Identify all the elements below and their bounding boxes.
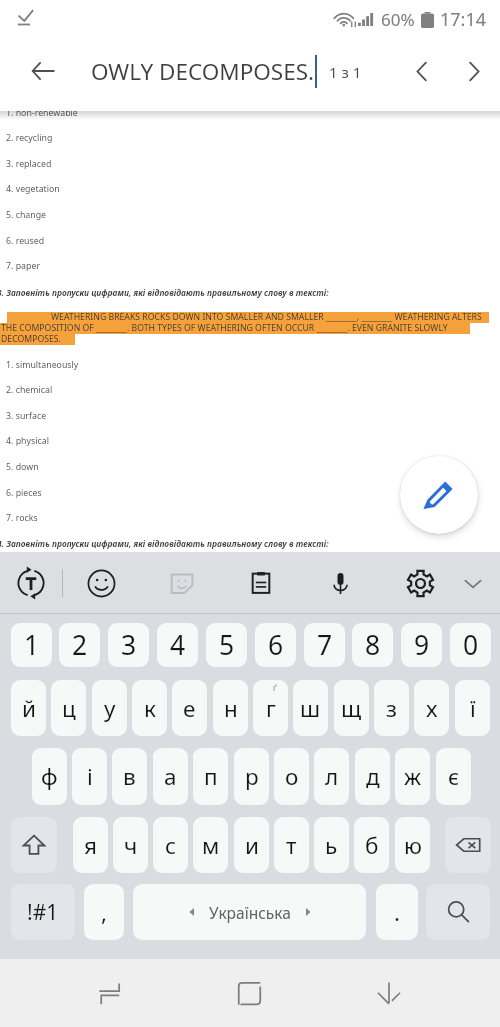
staticText: 3. Заповніть пропуски цифрами, які відпо… <box>0 287 329 298</box>
button[interactable]: е <box>172 680 207 736</box>
button[interactable]: Previous result <box>400 49 444 93</box>
button[interactable]: Keyboard settings <box>398 561 442 605</box>
button[interactable]: Search <box>426 884 490 940</box>
button[interactable]: ц <box>51 680 86 736</box>
button[interactable]: Recent apps <box>64 967 154 1019</box>
staticText: е <box>183 693 196 724</box>
button[interactable]: 1 <box>11 623 52 667</box>
staticText: 17:14 <box>440 7 487 32</box>
button[interactable]: т <box>274 817 309 873</box>
staticText: 2. chemical <box>6 384 53 396</box>
staticText: WEATHERING BREAKS ROCKS DOWN INTO SMALLE… <box>51 311 482 322</box>
button[interactable]: 5 <box>206 623 247 667</box>
button[interactable]: Hide keyboard <box>451 561 495 605</box>
staticText: 6 <box>268 627 284 663</box>
staticText: 2. recycling <box>6 132 53 144</box>
staticText: і <box>87 761 93 792</box>
staticText: ж <box>404 761 422 792</box>
button[interactable]: щ <box>334 680 369 736</box>
button[interactable]: а <box>153 748 188 805</box>
staticText: THE COMPOSITION OF ________. BOTH TYPES … <box>1 322 448 333</box>
staticText: 7. rocks <box>6 512 38 524</box>
button[interactable]: с <box>153 817 188 873</box>
button[interactable]: у <box>92 680 127 736</box>
button[interactable]: Backspace <box>445 817 491 873</box>
button[interactable]: Translate <box>9 561 53 605</box>
staticText: 9 <box>414 627 430 663</box>
button[interactable]: , <box>84 884 124 940</box>
button[interactable]: к <box>132 680 167 736</box>
button[interactable]: л <box>314 748 349 805</box>
button[interactable]: я <box>73 817 108 873</box>
staticText: є <box>448 761 460 792</box>
button[interactable]: й <box>11 680 46 736</box>
button[interactable]: 9 <box>401 623 442 667</box>
staticText: !#1 <box>27 898 59 927</box>
staticText: 1. simultaneously <box>6 359 79 371</box>
button[interactable]: ж <box>395 748 430 805</box>
button[interactable]: Shift <box>11 817 57 873</box>
staticText: 1 <box>24 627 40 663</box>
staticText: 5 <box>219 627 235 663</box>
staticText: ї <box>470 693 476 724</box>
button[interactable]: Home <box>204 967 294 1019</box>
staticText: ш <box>300 693 321 724</box>
staticText: ц <box>62 693 76 724</box>
button[interactable]: м <box>193 817 228 873</box>
button[interactable]: ь <box>314 817 349 873</box>
staticText: р <box>245 761 259 792</box>
button[interactable]: о <box>274 748 309 805</box>
staticText: 3 <box>121 627 137 663</box>
button[interactable]: 3 <box>108 623 149 667</box>
button[interactable]: 8 <box>352 623 393 667</box>
button[interactable]: Clipboard <box>239 561 283 605</box>
staticText: г <box>266 693 276 724</box>
staticText: н <box>224 693 238 724</box>
staticText: д <box>366 761 380 792</box>
button[interactable]: п <box>193 748 228 805</box>
button[interactable]: з <box>374 680 409 736</box>
button[interactable]: Emoji <box>79 561 123 605</box>
button[interactable]: в <box>112 748 147 805</box>
button[interactable]: д <box>355 748 390 805</box>
button[interactable]: і <box>72 748 107 805</box>
button[interactable]: ю <box>395 817 430 873</box>
button[interactable]: Українська <box>133 884 366 940</box>
button[interactable]: Stickers <box>160 561 204 605</box>
button[interactable]: х <box>414 680 449 736</box>
staticText: т <box>286 830 297 861</box>
button[interactable]: Back <box>344 967 434 1019</box>
button[interactable]: р <box>234 748 269 805</box>
button[interactable]: ч <box>113 817 148 873</box>
staticText: 4. Заповніть пропуски цифрами, які відпо… <box>0 538 329 549</box>
button[interactable]: н <box>213 680 248 736</box>
button[interactable]: 4 <box>157 623 198 667</box>
staticText: л <box>325 761 339 792</box>
staticText: 2 <box>72 627 88 663</box>
button[interactable]: г <box>253 680 288 736</box>
staticText: 4. vegetation <box>6 183 60 195</box>
button[interactable]: Edit <box>400 456 478 534</box>
staticText: DECOMPOSES. <box>1 333 61 344</box>
staticText: 7 <box>317 627 333 663</box>
button[interactable]: Back <box>19 47 67 95</box>
button[interactable]: ї <box>455 680 490 736</box>
button[interactable]: 0 <box>450 623 491 667</box>
button[interactable]: 7 <box>304 623 345 667</box>
staticText: в <box>123 761 136 792</box>
button[interactable]: и <box>234 817 269 873</box>
staticText: щ <box>341 693 362 724</box>
button[interactable]: . <box>376 884 418 940</box>
button[interactable]: Voice input <box>318 561 362 605</box>
button[interactable]: ш <box>293 680 328 736</box>
staticText: х <box>426 693 438 724</box>
button[interactable]: є <box>436 748 471 805</box>
button[interactable]: 6 <box>255 623 296 667</box>
button[interactable]: !#1 <box>11 884 75 940</box>
button[interactable]: Next result <box>451 49 495 93</box>
staticText: Українська <box>209 902 291 923</box>
button[interactable]: 2 <box>59 623 100 667</box>
button[interactable]: б <box>354 817 389 873</box>
staticText: ю <box>404 830 422 861</box>
button[interactable]: ф <box>32 748 67 805</box>
